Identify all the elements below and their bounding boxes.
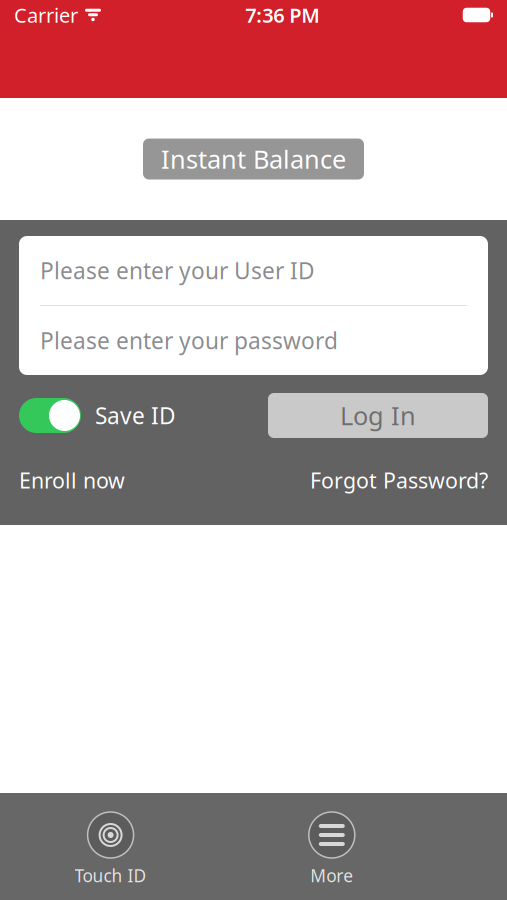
- button[interactable]: More: [286, 812, 378, 887]
- staticText: Instant Balance: [161, 142, 346, 176]
- button[interactable]: Forgot Password?: [310, 460, 488, 500]
- staticText: Save ID: [95, 400, 176, 430]
- button[interactable]: Save ID: [19, 398, 176, 433]
- button[interactable]: Please enter your password: [19, 306, 488, 375]
- button[interactable]: Log In: [268, 393, 488, 438]
- staticText: Touch ID: [75, 864, 147, 887]
- button[interactable]: Touch ID: [65, 812, 157, 887]
- staticText: 7:36 PM: [245, 2, 320, 28]
- staticText: More: [310, 864, 353, 887]
- staticText: Enroll now: [19, 466, 125, 494]
- button[interactable]: Instant Balance: [143, 138, 364, 179]
- staticText: Forgot Password?: [310, 466, 488, 494]
- button[interactable]: Enroll now: [19, 460, 125, 500]
- staticText: Log In: [340, 399, 416, 432]
- staticText: Please enter your password: [40, 325, 338, 355]
- staticText: Carrier: [14, 2, 78, 28]
- staticText: Please enter your User ID: [40, 255, 315, 285]
- button[interactable]: Please enter your User ID: [19, 236, 488, 305]
